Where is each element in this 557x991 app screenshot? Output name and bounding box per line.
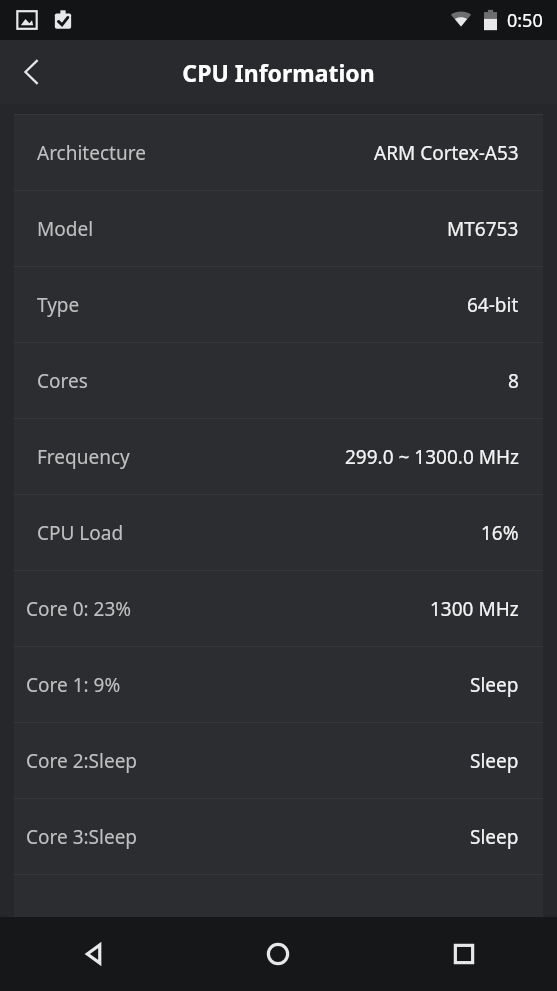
staticText: Sleep	[470, 672, 519, 698]
staticText: Core 0: 23%	[26, 596, 132, 622]
staticText: MT6753	[447, 216, 519, 242]
button[interactable]: Home	[185, 917, 371, 991]
staticText: 1300 MHz	[430, 596, 519, 622]
staticText: 16%	[481, 520, 519, 546]
staticText: Model	[37, 216, 94, 242]
staticText: 0:50	[507, 8, 543, 33]
staticText: Core 1: 9%	[26, 672, 121, 698]
button[interactable]: Architecture	[14, 115, 543, 190]
staticText: Core 3:Sleep	[26, 824, 138, 850]
staticText: 64-bit	[467, 292, 519, 318]
button[interactable]: Recent apps	[371, 917, 557, 991]
staticText: 299.0 ~ 1300.0 MHz	[345, 444, 519, 470]
staticText: ARM Cortex-A53	[374, 140, 519, 166]
staticText: Architecture	[37, 140, 146, 166]
button[interactable]: CPU Load	[14, 495, 543, 570]
staticText: Frequency	[37, 444, 130, 470]
staticText: Sleep	[470, 748, 519, 774]
button[interactable]: Core 2:Sleep	[14, 723, 543, 798]
button[interactable]: Back	[0, 917, 185, 991]
staticText: Cores	[37, 368, 88, 394]
staticText: Type	[37, 292, 80, 318]
button[interactable]: Core 3:Sleep	[14, 799, 543, 874]
staticText: Core 2:Sleep	[26, 748, 138, 774]
button[interactable]: Cores	[14, 343, 543, 418]
button[interactable]: Core 0: 23%	[14, 571, 543, 646]
button[interactable]: Back	[0, 40, 64, 104]
button[interactable]: Frequency	[14, 419, 543, 494]
staticText: CPU Load	[37, 520, 124, 546]
staticText: 8	[508, 368, 519, 394]
staticText: CPU Information	[182, 57, 375, 88]
button[interactable]: Model	[14, 191, 543, 266]
staticText: Sleep	[470, 824, 519, 850]
button[interactable]: Core 1: 9%	[14, 647, 543, 722]
button[interactable]: Type	[14, 267, 543, 342]
